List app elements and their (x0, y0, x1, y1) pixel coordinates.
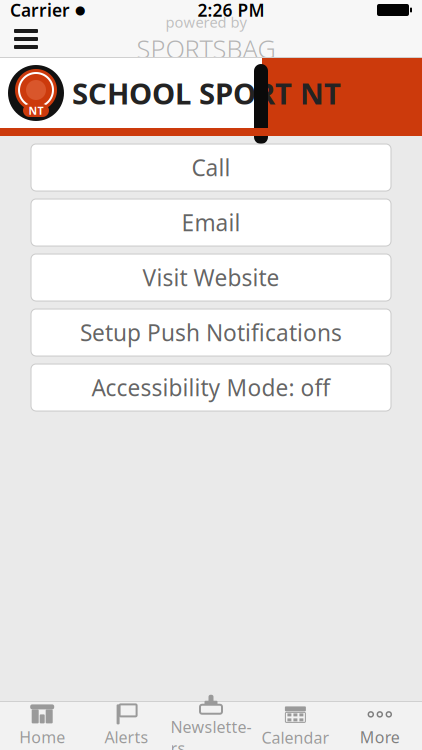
staticText: Calendar (261, 727, 329, 748)
button[interactable]: More (338, 702, 422, 750)
button[interactable]: Newsletters (169, 702, 253, 750)
button[interactable]: Setup Push Notifications (31, 309, 391, 356)
button[interactable]: Call (31, 144, 391, 191)
staticText: 2:26 PM (197, 0, 264, 21)
staticText: Alerts (105, 726, 149, 748)
staticText: More (360, 726, 400, 748)
staticText: ● (75, 3, 85, 17)
staticText: NT (28, 103, 43, 118)
staticText: SPORTSBAG (136, 32, 275, 65)
button[interactable]: Alerts (84, 702, 169, 750)
staticText: Email (181, 207, 240, 237)
button[interactable]: Calendar (253, 702, 338, 750)
staticText: Home (19, 726, 65, 748)
staticText: Newsletters (170, 716, 251, 750)
staticText: Visit Website (142, 262, 279, 292)
button[interactable]: Accessibility Mode: off (31, 364, 391, 411)
staticText: powered by (165, 12, 246, 32)
button[interactable]: Email (31, 199, 391, 246)
staticText: Carrier (10, 0, 70, 21)
staticText: Setup Push Notifications (80, 317, 342, 347)
staticText: SCHOOL SPORT NT (72, 73, 341, 112)
staticText: Call (191, 152, 230, 182)
staticText: Accessibility Mode: off (91, 372, 330, 402)
button[interactable]: Home (0, 702, 84, 750)
button[interactable]: Visit Website (31, 254, 391, 301)
button[interactable]: Menu (0, 20, 52, 58)
